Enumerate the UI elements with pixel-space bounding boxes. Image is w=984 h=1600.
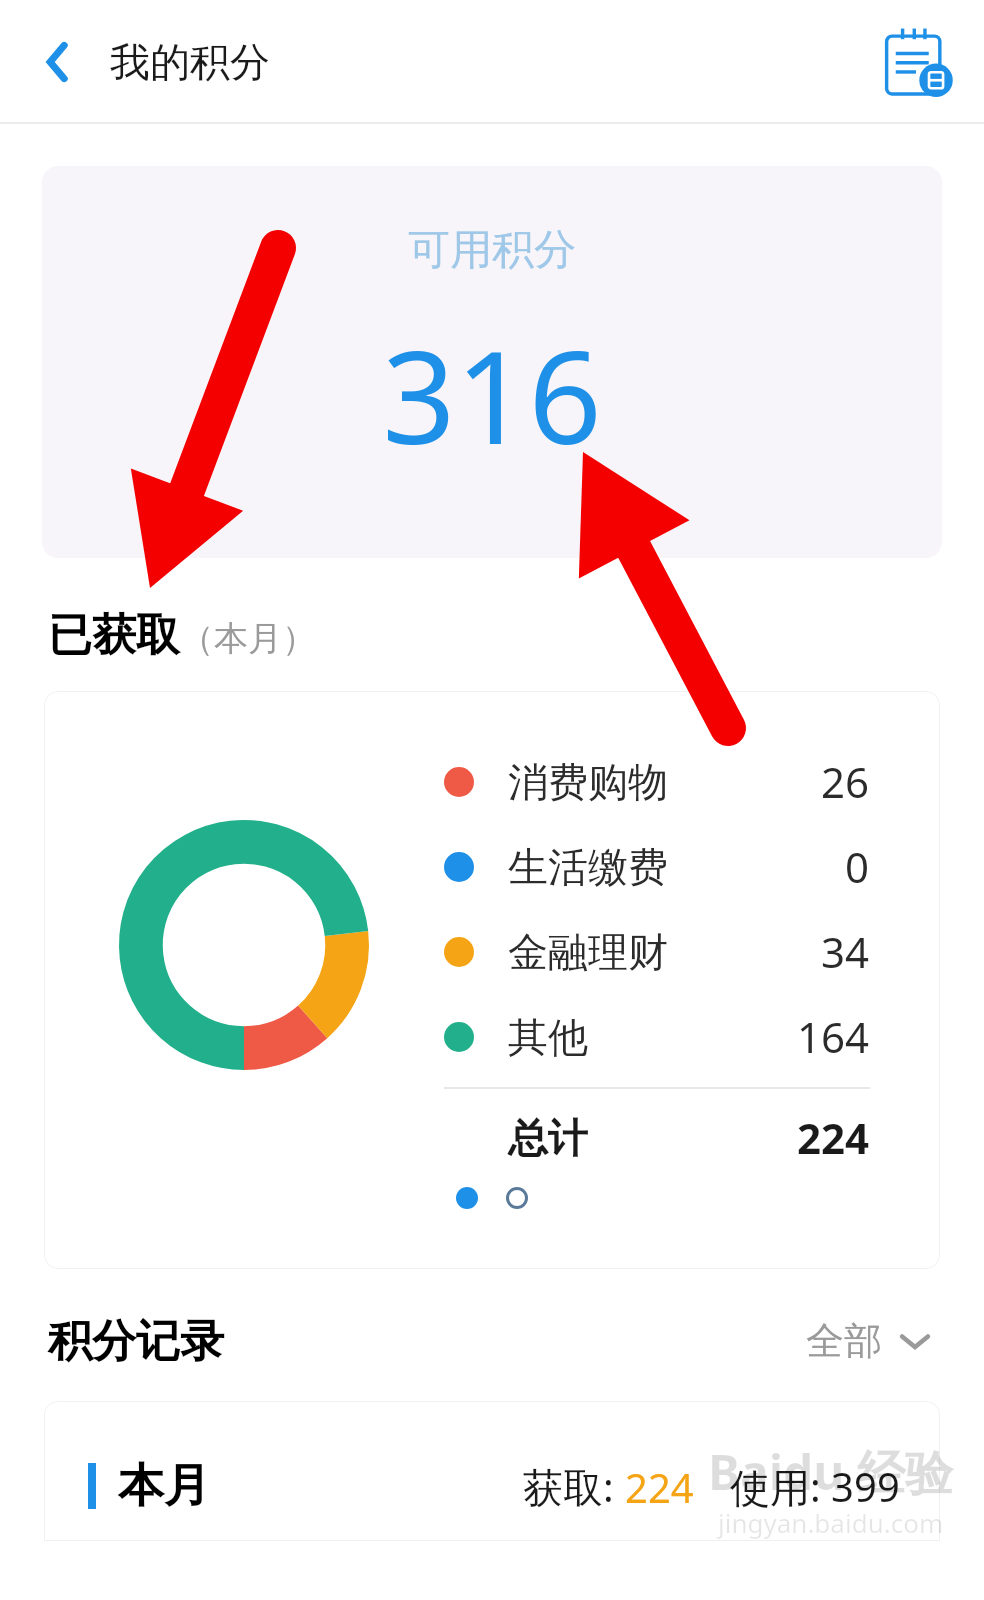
staticText: 34 (821, 923, 870, 980)
staticText: 总计 (508, 1113, 588, 1163)
button[interactable]: Back (22, 30, 86, 94)
staticText: 本月 (118, 1457, 210, 1515)
staticText: 使用: 399 (730, 1459, 900, 1514)
staticText: 我的积分 (110, 37, 270, 87)
staticText: 164 (797, 1008, 870, 1065)
staticText: 其他 (508, 1012, 588, 1062)
staticText: 积分记录 (48, 1314, 224, 1369)
staticText: 已获取 (48, 608, 180, 663)
button[interactable]: 消费购物 (44, 691, 940, 1269)
staticText: Baidu 经验 (708, 1439, 954, 1505)
staticText: jingyan.baidu.com (718, 1505, 944, 1540)
staticText: 224 (625, 1460, 694, 1514)
staticText: 生活缴费 (508, 842, 668, 892)
button[interactable]: 可用积分 (42, 166, 942, 558)
button[interactable]: Monthly record (876, 24, 952, 100)
staticText: 获取: (523, 1459, 625, 1514)
staticText: 可用积分 (408, 224, 576, 277)
button[interactable]: 全部 (800, 1311, 940, 1371)
staticText: 0 (845, 838, 870, 895)
staticText: 316 (382, 307, 602, 481)
staticText: （本月） (180, 617, 316, 660)
staticText: 224 (797, 1109, 870, 1166)
staticText: 金融理财 (508, 927, 668, 977)
button[interactable]: 本月 (44, 1401, 940, 1541)
staticText: 全部 (806, 1317, 882, 1365)
staticText: 消费购物 (508, 757, 668, 807)
staticText: 26 (821, 753, 870, 810)
